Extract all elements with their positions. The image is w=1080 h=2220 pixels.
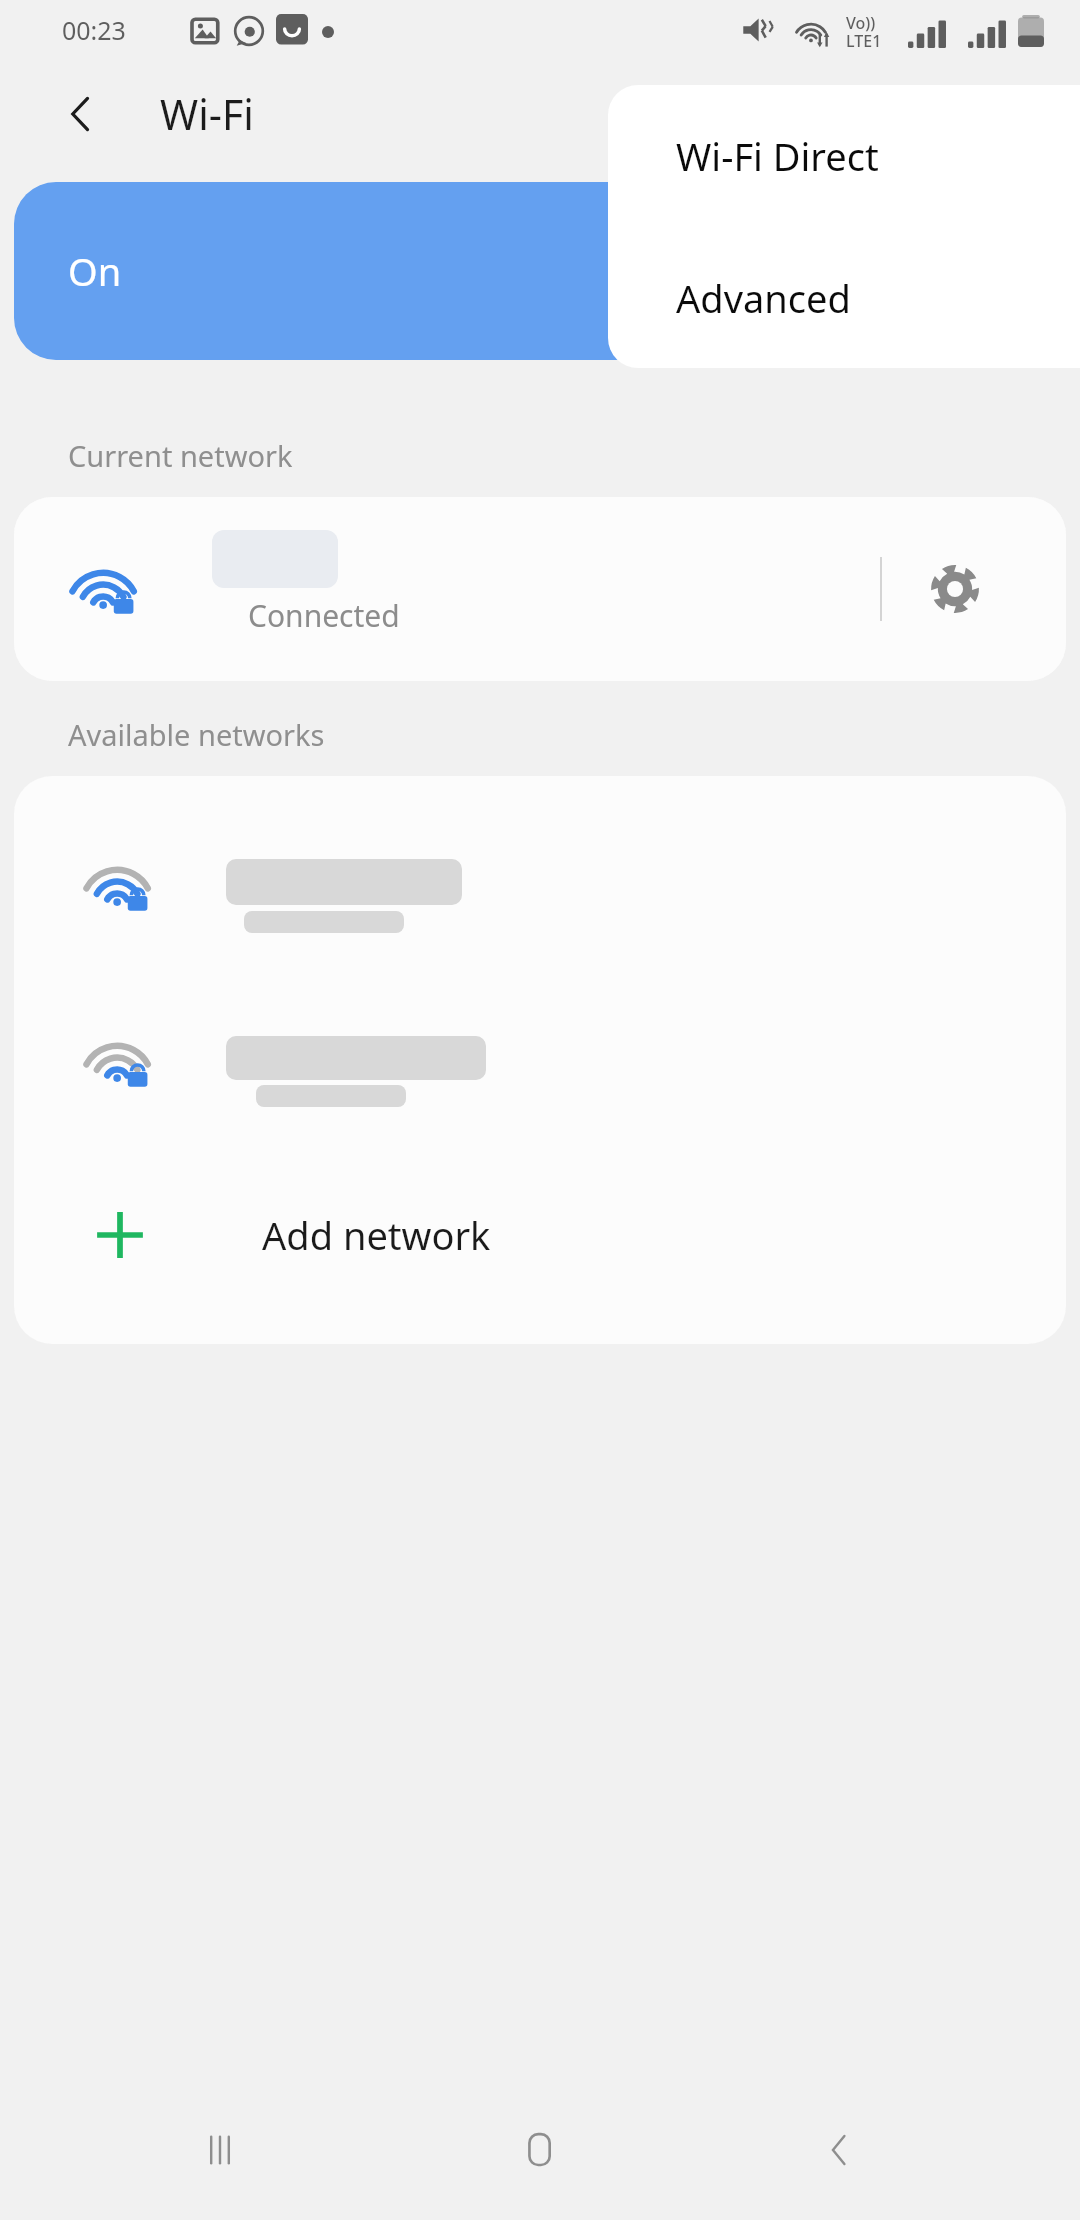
staticText: On (68, 245, 122, 297)
staticText: Connected (248, 595, 400, 636)
button[interactable]: Advanced (608, 227, 1080, 368)
button[interactable]: On (14, 182, 1066, 360)
button[interactable]: Recents (180, 2110, 260, 2190)
staticText: Advanced (676, 272, 851, 324)
staticText: Vo)) (846, 12, 876, 34)
staticText: Current network (68, 436, 293, 475)
button[interactable]: Connected (14, 497, 1066, 681)
button[interactable]: Wi-Fi Direct (608, 85, 1080, 227)
staticText: Available networks (68, 715, 325, 754)
staticText: Wi-Fi (160, 86, 254, 142)
button[interactable]: Network settings (900, 534, 1010, 644)
staticText: Add network (262, 1209, 491, 1261)
staticText: 00:23 (62, 13, 126, 47)
button[interactable] (14, 798, 1066, 974)
button[interactable]: Add network (14, 1150, 1066, 1320)
button[interactable]: Navigate up (46, 78, 118, 150)
button[interactable]: Back (800, 2110, 880, 2190)
button[interactable] (14, 974, 1066, 1150)
button[interactable]: Home (500, 2110, 580, 2190)
staticText: Wi-Fi Direct (676, 130, 879, 182)
staticText: LTE1 (846, 30, 882, 52)
